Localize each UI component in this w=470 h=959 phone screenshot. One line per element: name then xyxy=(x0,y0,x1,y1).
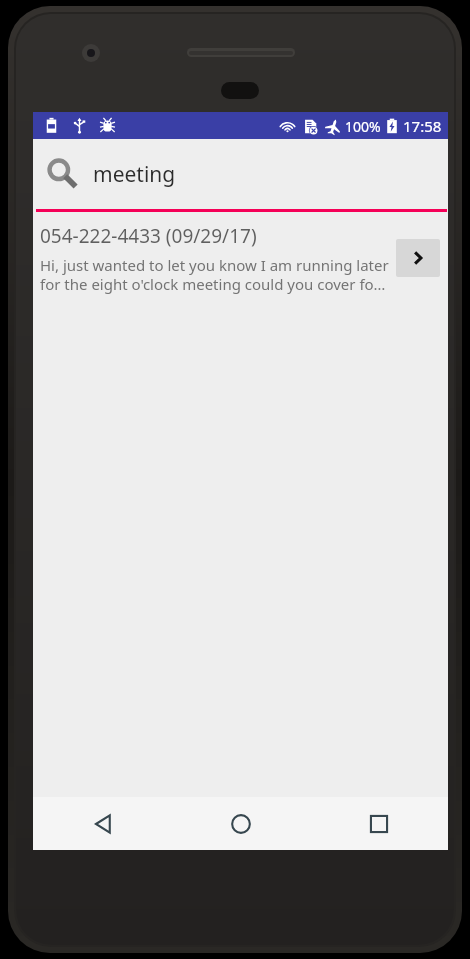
button[interactable]: 054-222-4433 (09/29/17) xyxy=(33,212,448,304)
button[interactable]: Back xyxy=(33,797,172,850)
staticText: 054-222-4433 (09/29/17) xyxy=(40,223,257,249)
staticText: Hi, just wanted to let you know I am run… xyxy=(40,255,390,294)
staticText: 17:58 xyxy=(403,116,442,136)
staticText: meeting xyxy=(93,160,176,189)
button[interactable]: Home xyxy=(172,797,310,850)
button[interactable]: meeting xyxy=(33,139,448,212)
staticText: 100% xyxy=(345,117,381,136)
button[interactable]: Recents xyxy=(310,797,448,850)
button[interactable]: Open conversation xyxy=(396,239,440,277)
